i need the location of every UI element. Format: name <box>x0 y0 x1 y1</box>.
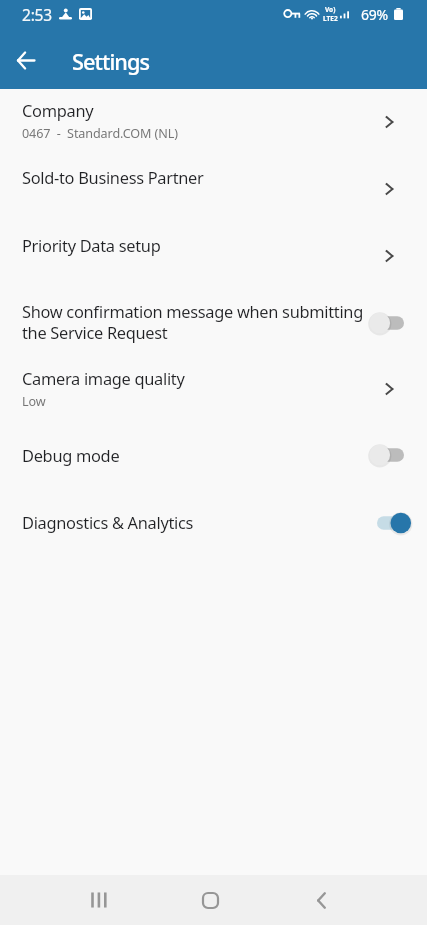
staticText: Priority Data setup <box>22 234 161 256</box>
button[interactable]: Sold-to Business Partner <box>0 153 427 211</box>
staticText: Company <box>22 99 94 121</box>
button[interactable]: Back <box>296 875 346 925</box>
button[interactable]: Toggle <box>369 512 411 534</box>
button[interactable]: Toggle <box>369 312 411 334</box>
other: Open <box>375 375 403 403</box>
button[interactable]: Debug mode <box>0 426 427 488</box>
staticText: Vo) <box>325 5 336 14</box>
button[interactable]: Home <box>185 875 235 925</box>
button[interactable]: Back <box>8 42 44 78</box>
staticText: Settings <box>72 47 150 77</box>
staticText: 69% <box>361 5 389 24</box>
staticText: LTE2 <box>323 14 338 23</box>
staticText: 0467 - Standard.COM (NL) <box>22 125 178 142</box>
staticText: Sold-to Business Partner <box>22 166 204 188</box>
button[interactable]: Recent apps <box>74 875 124 925</box>
button[interactable]: Show confirmation message when submittin… <box>0 278 427 355</box>
staticText: Diagnostics & Analytics <box>22 511 194 533</box>
button[interactable]: Priority Data setup <box>0 211 427 278</box>
button[interactable]: Diagnostics & Analytics <box>0 488 427 555</box>
other: Open <box>375 108 403 136</box>
staticText: Low <box>22 393 46 410</box>
staticText: Camera image quality <box>22 367 185 389</box>
other: Open <box>375 175 403 203</box>
staticText: Debug mode <box>22 444 120 466</box>
button[interactable]: Toggle <box>369 444 411 466</box>
staticText: Show confirmation message when submittin… <box>22 300 366 344</box>
other: Open <box>375 242 403 270</box>
staticText: 2:53 <box>22 4 52 25</box>
button[interactable]: Camera image quality <box>0 355 427 426</box>
button[interactable]: Company <box>0 89 427 153</box>
